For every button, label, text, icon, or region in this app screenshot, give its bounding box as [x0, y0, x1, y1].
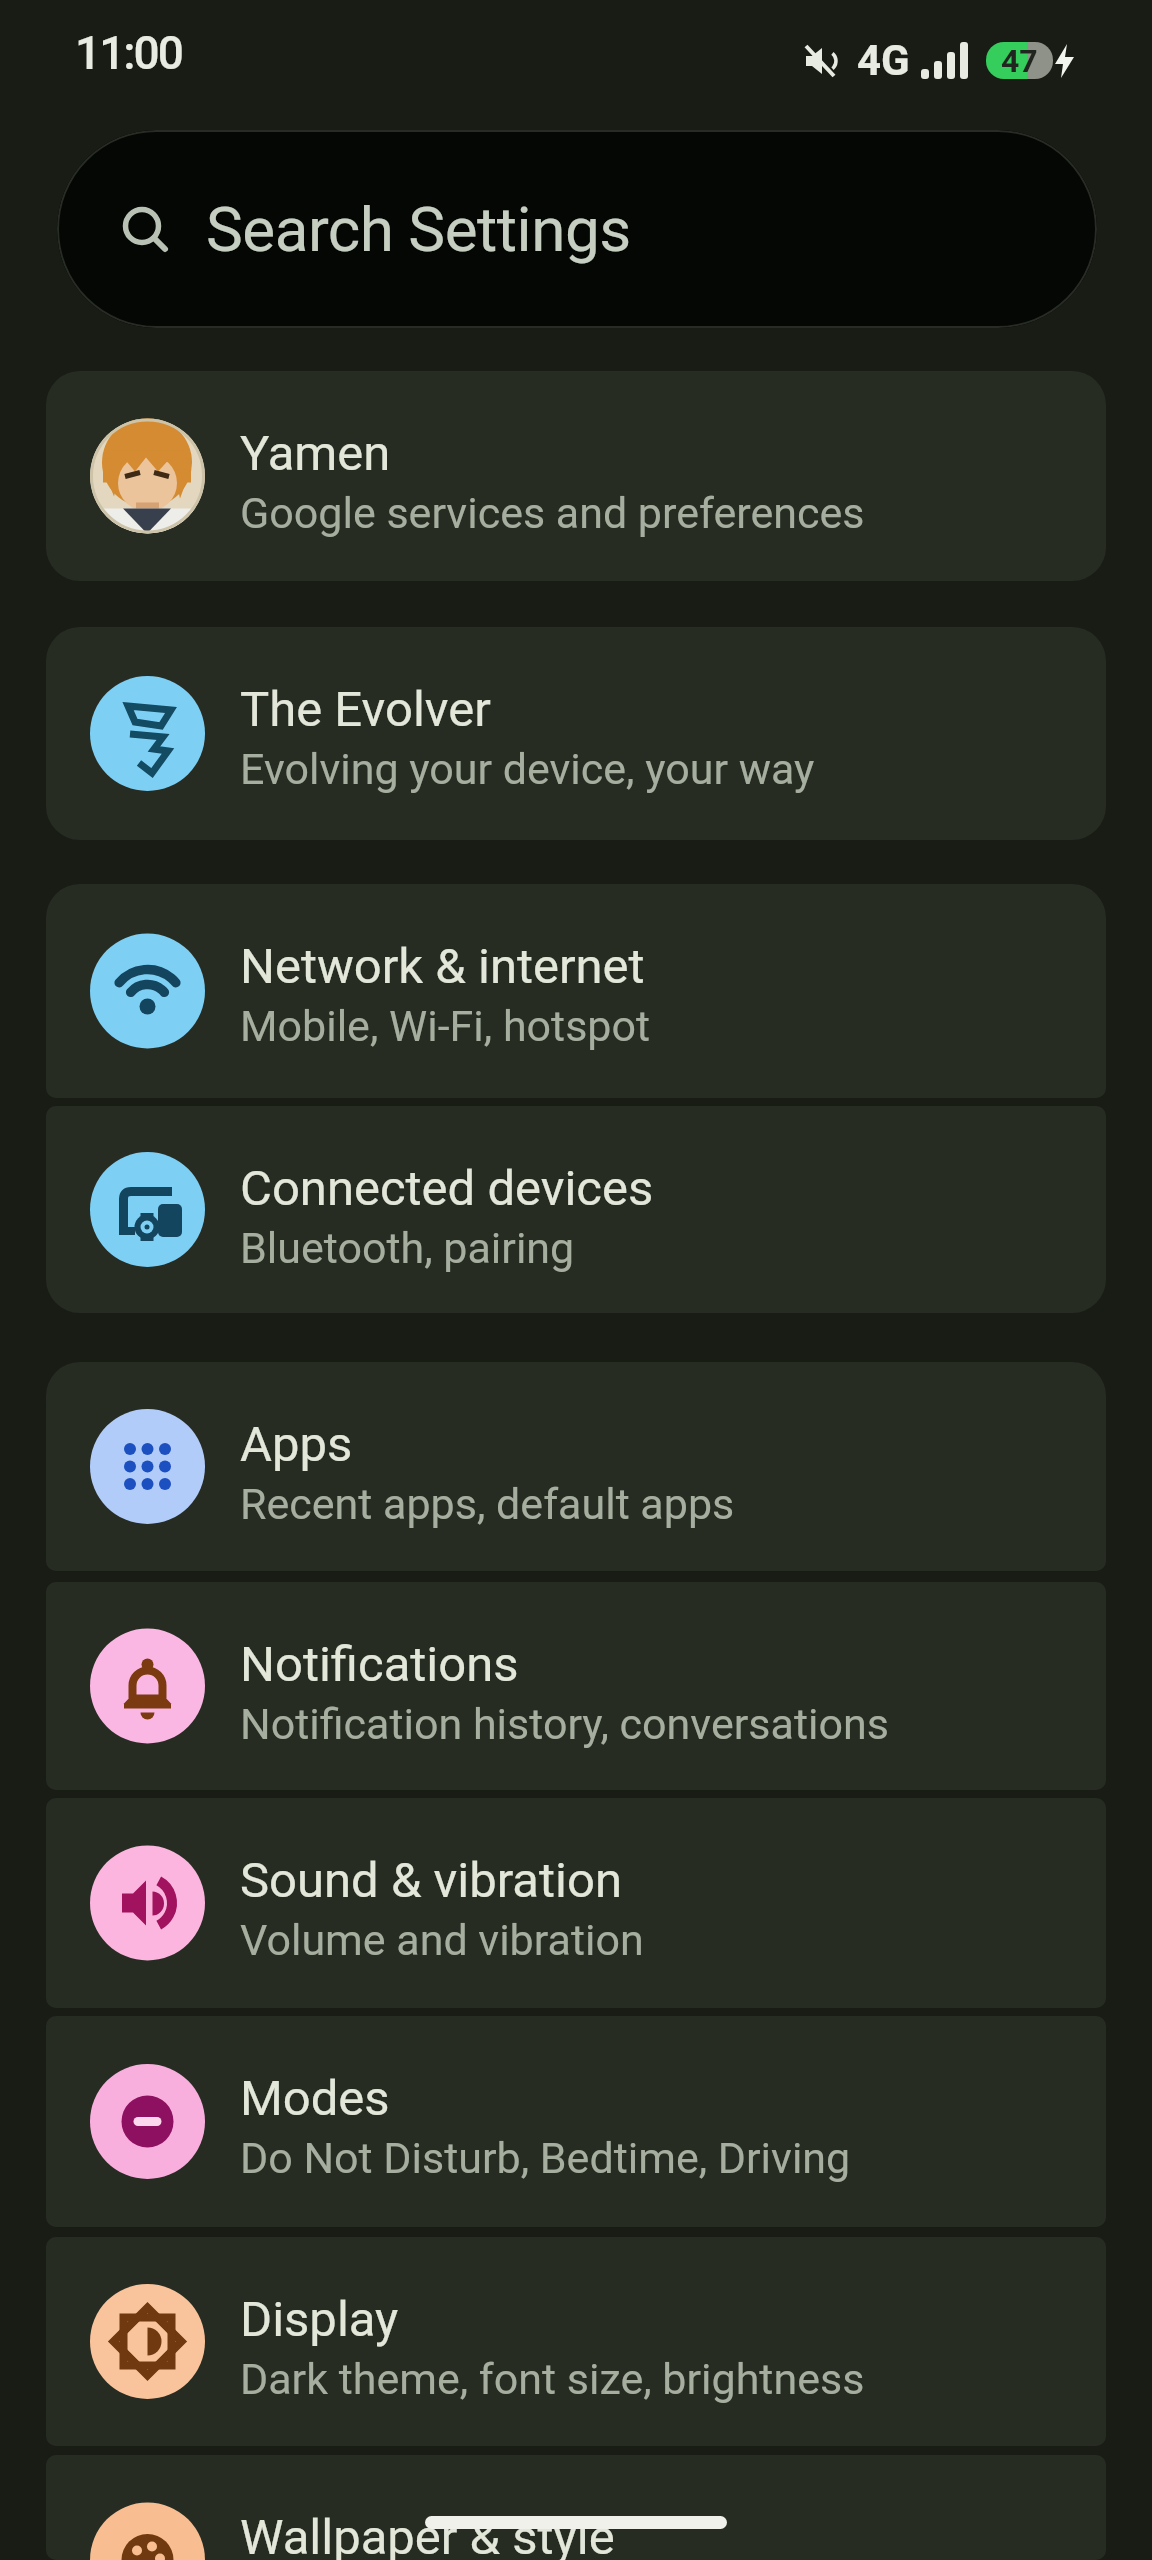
staticText: Display	[240, 2291, 399, 2348]
staticText: Mobile, Wi-Fi, hotspot	[240, 1001, 651, 1051]
staticText: 47	[1001, 42, 1038, 79]
button[interactable]: Connected devices	[46, 1106, 1106, 1313]
button[interactable]: Search Settings	[57, 130, 1097, 328]
staticText: Yamen	[240, 425, 391, 482]
button[interactable]: Network & internet	[46, 884, 1106, 1098]
button[interactable]: Apps	[46, 1362, 1106, 1571]
staticText: Wallpaper & style	[240, 2509, 615, 2560]
button[interactable]: Display	[46, 2237, 1106, 2446]
staticText: Connected devices	[240, 1160, 654, 1217]
staticText: Bluetooth, pairing	[240, 1223, 575, 1273]
staticText: Recent apps, default apps	[240, 1479, 735, 1529]
button[interactable]: Yamen	[46, 371, 1106, 581]
staticText: Search Settings	[206, 193, 631, 266]
staticText: Sound & vibration	[240, 1852, 622, 1909]
staticText: 11:00	[75, 26, 182, 80]
staticText: Notifications	[240, 1636, 519, 1693]
staticText: The Evolver	[240, 681, 491, 738]
staticText: Volume and vibration	[240, 1915, 644, 1965]
staticText: Do Not Disturb, Bedtime, Driving	[240, 2133, 851, 2183]
button[interactable]: Sound & vibration	[46, 1798, 1106, 2008]
button[interactable]: The Evolver	[46, 627, 1106, 840]
staticText: 4G	[857, 36, 910, 85]
button[interactable]: Notifications	[46, 1582, 1106, 1790]
staticText: Notification history, conversations	[240, 1699, 889, 1749]
staticText: Dark theme, font size, brightness	[240, 2354, 865, 2404]
staticText: Network & internet	[240, 938, 645, 995]
staticText: Modes	[240, 2070, 390, 2127]
button[interactable]: Modes	[46, 2016, 1106, 2227]
button[interactable]: Wallpaper & style	[46, 2455, 1106, 2560]
staticText: Evolving your device, your way	[240, 744, 815, 794]
staticText: Apps	[240, 1416, 353, 1473]
staticText: Google services and preferences	[240, 488, 865, 538]
